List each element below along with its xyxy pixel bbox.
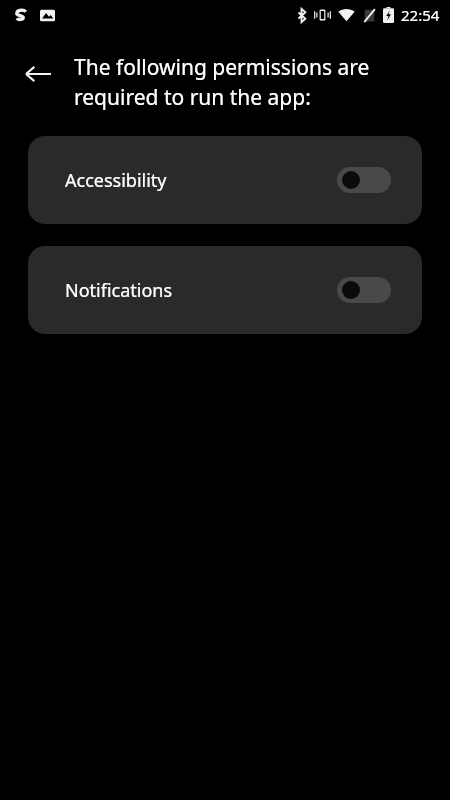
button[interactable]: Notifications: [28, 246, 422, 334]
button[interactable]: Back: [12, 48, 64, 100]
staticText: 22:54: [401, 5, 440, 25]
staticText: Notifications: [65, 278, 173, 303]
button[interactable]: Accessibility: [28, 136, 422, 224]
staticText: Accessibility: [65, 168, 167, 193]
button[interactable]: Accessibility toggle, off: [337, 167, 391, 193]
button[interactable]: Notifications toggle, off: [337, 277, 391, 303]
staticText: The following permissions are required t…: [74, 53, 414, 111]
